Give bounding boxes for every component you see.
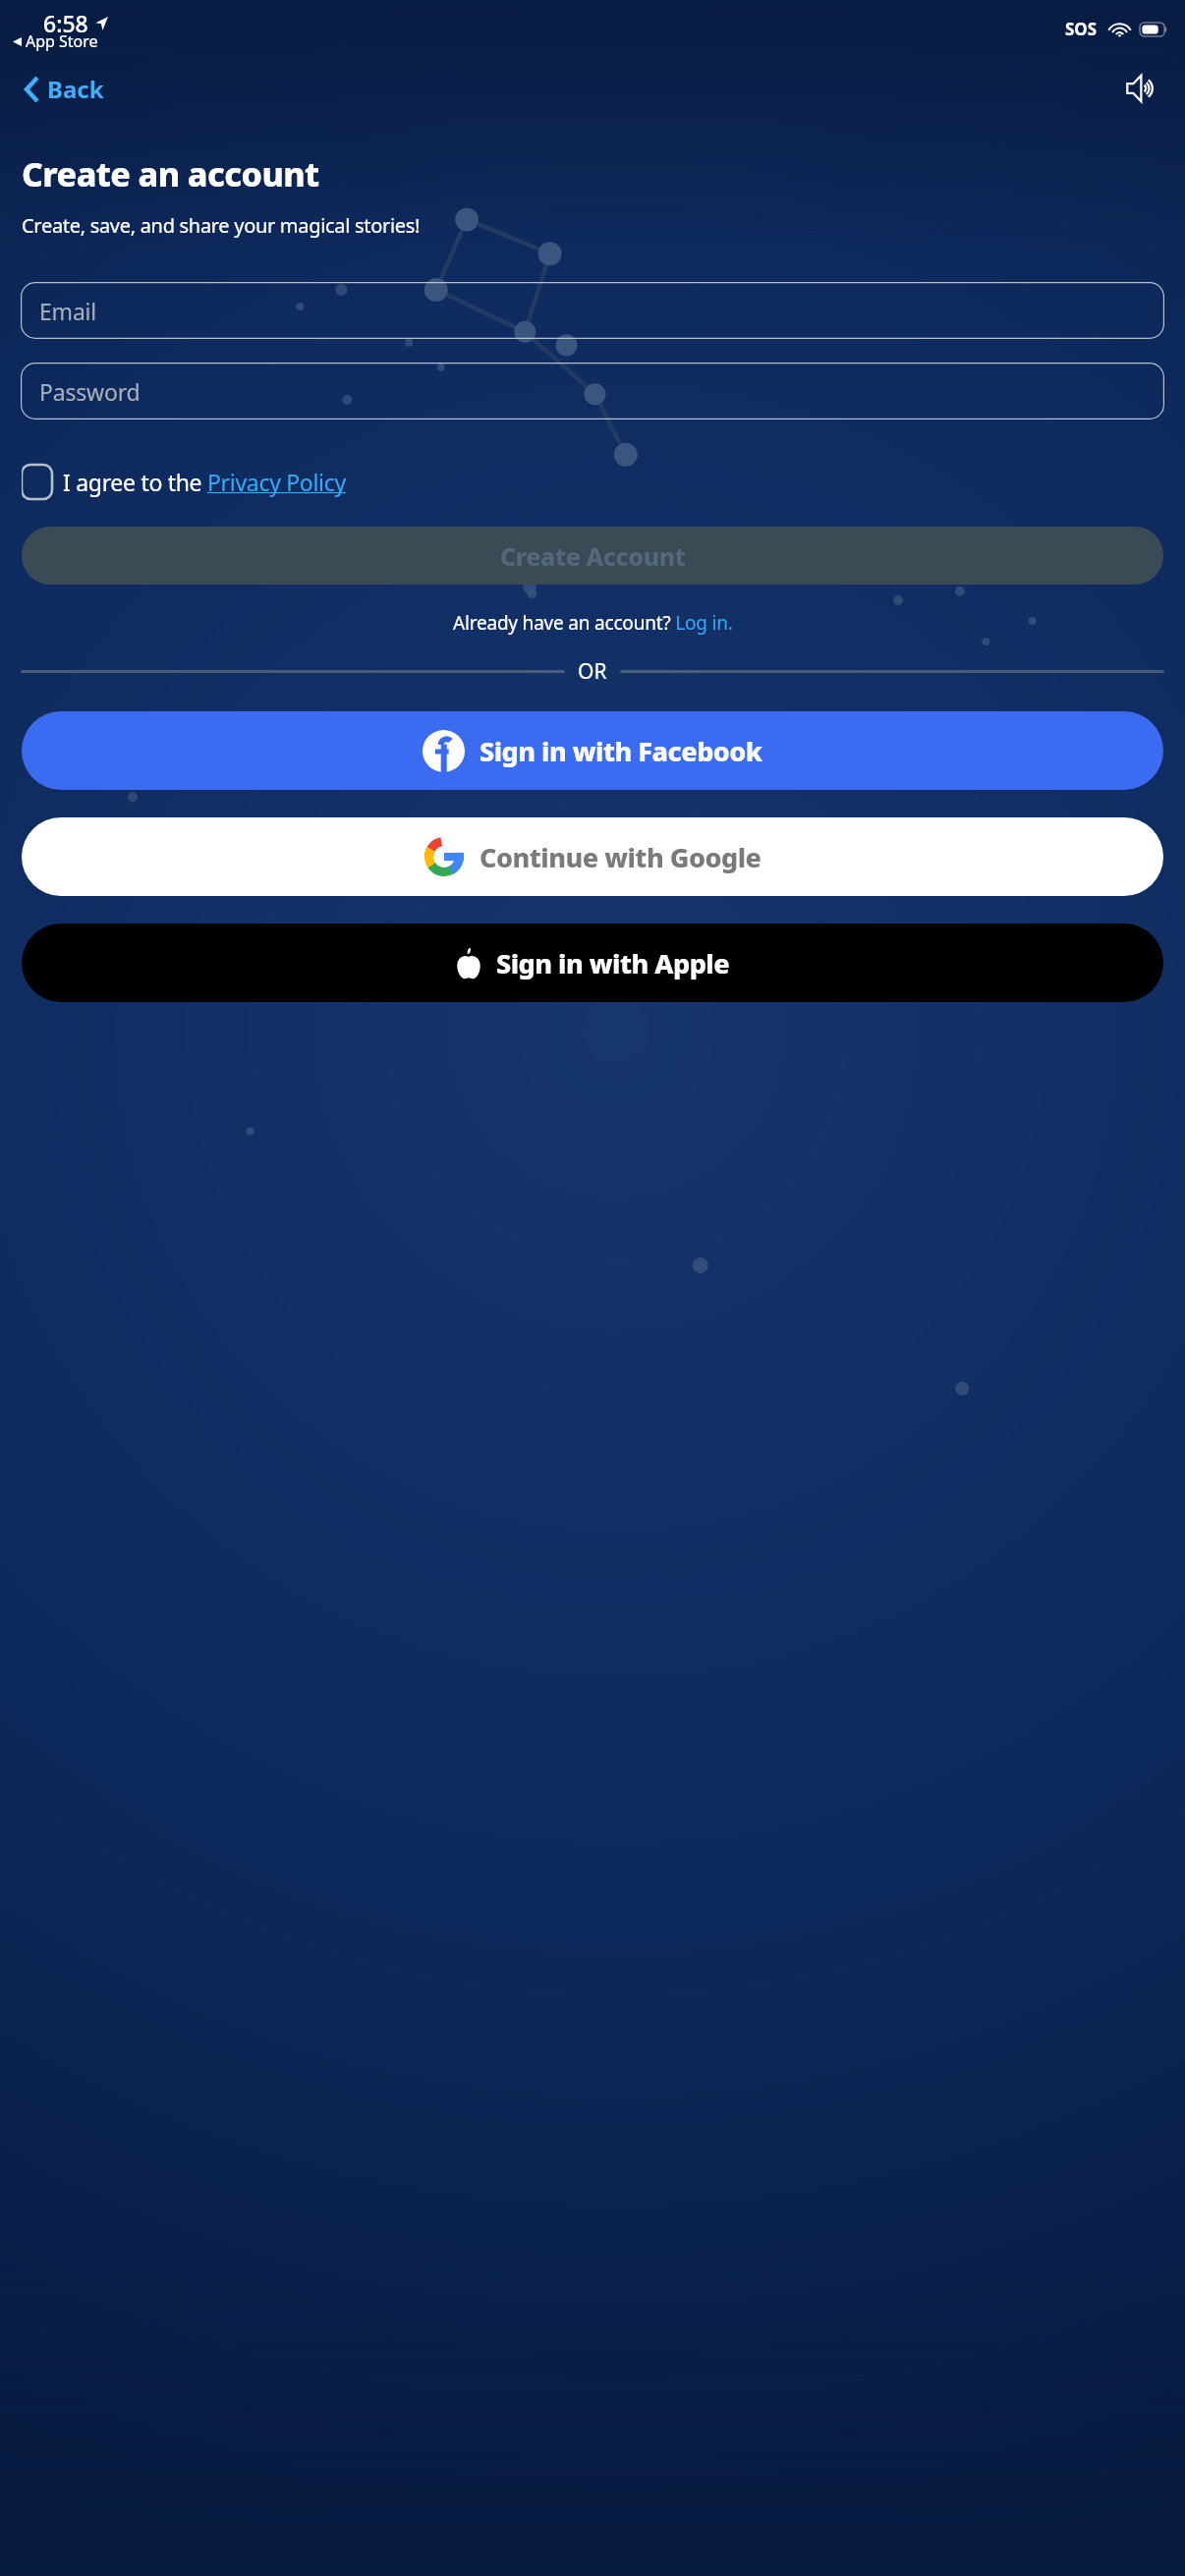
staticText: Sign in with Facebook [480, 733, 762, 769]
staticText: Email [39, 296, 97, 326]
button[interactable]: Sound [1120, 68, 1163, 109]
staticText: App Store [26, 30, 98, 52]
staticText: Create, save, and share your magical sto… [22, 212, 421, 239]
staticText: Sign in with Apple [496, 945, 730, 981]
button[interactable]: Continue with Google [22, 817, 1163, 896]
button[interactable]: Already have an account? Log in. [445, 606, 741, 640]
button[interactable]: Create Account [22, 527, 1163, 585]
staticText: I agree to the Privacy Policy [63, 467, 346, 497]
staticText: Create Account [500, 539, 686, 573]
staticText: Password [39, 376, 141, 407]
button[interactable]: Sign in with Facebook [22, 711, 1163, 790]
staticText: OR [578, 657, 607, 686]
staticText: 6:58 [43, 8, 88, 38]
staticText: Already have an account? Log in. [453, 610, 733, 636]
staticText: Continue with Google [480, 839, 762, 875]
staticText: SOS [1065, 18, 1098, 40]
button[interactable]: I agree to the Privacy Policy [22, 461, 346, 503]
button[interactable]: Back [20, 67, 110, 111]
staticText: Back [47, 73, 104, 105]
button[interactable]: Sign in with Apple [22, 924, 1163, 1002]
button[interactable]: Password [21, 363, 1164, 420]
staticText: Create an account [22, 151, 319, 196]
button[interactable]: Email [21, 282, 1164, 339]
